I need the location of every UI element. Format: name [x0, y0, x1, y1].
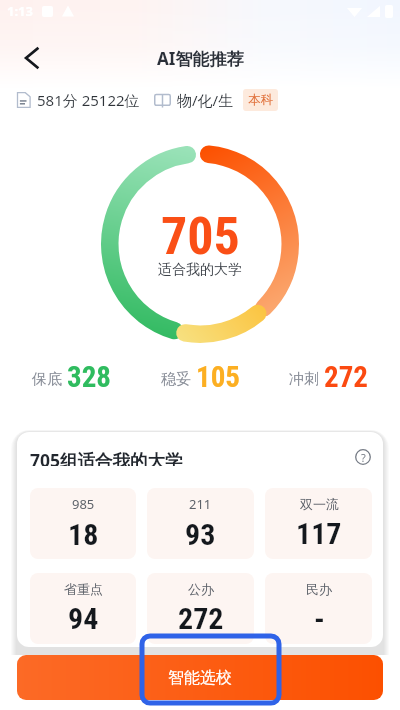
button[interactable]: 省重点: [30, 573, 136, 644]
button[interactable]: 双一流: [265, 488, 372, 559]
staticText: 328: [67, 360, 111, 394]
staticText: AI智能推荐: [157, 47, 244, 70]
staticText: 适合我的大学: [158, 261, 242, 279]
staticText: 272: [324, 360, 368, 394]
staticText: 省重点: [64, 581, 103, 597]
staticText: ?: [361, 450, 366, 465]
button[interactable]: 冲刺: [289, 360, 368, 394]
staticText: 705组适合我的大学: [30, 448, 183, 466]
staticText: 705: [161, 206, 240, 267]
staticText: 冲刺: [289, 370, 319, 389]
staticText: 本科: [248, 92, 273, 108]
staticText: 117: [296, 516, 342, 551]
button[interactable]: 保底: [32, 360, 111, 394]
staticText: 18: [68, 517, 99, 552]
staticText: 物/化/生: [177, 90, 234, 110]
staticText: 民办: [306, 581, 332, 597]
staticText: 保底: [32, 370, 62, 389]
staticText: 93: [185, 517, 216, 552]
button[interactable]: 211: [147, 488, 254, 559]
staticText: 稳妥: [161, 370, 191, 389]
staticText: 272: [178, 601, 224, 636]
staticText: -: [314, 601, 325, 636]
staticText: 双一流: [300, 496, 339, 512]
button[interactable]: 民办: [265, 573, 372, 644]
staticText: 211: [189, 495, 212, 513]
button[interactable]: 985: [30, 488, 136, 559]
button[interactable]: 稳妥: [161, 360, 240, 394]
staticText: 公办: [188, 581, 214, 597]
button[interactable]: 公办: [147, 573, 254, 644]
staticText: 985: [72, 495, 95, 513]
button[interactable]: 智能选校: [17, 655, 383, 700]
staticText: 105: [196, 360, 240, 394]
button[interactable]: Back: [7, 34, 55, 82]
staticText: 智能选校: [168, 668, 232, 688]
staticText: 1:13: [7, 2, 33, 20]
staticText: 581分 25122位: [37, 90, 140, 110]
staticText: 94: [68, 601, 99, 636]
button[interactable]: Help: [354, 448, 372, 466]
